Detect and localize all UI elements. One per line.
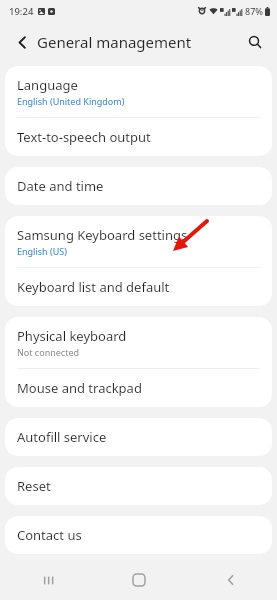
button[interactable]: Home [93, 560, 185, 600]
staticText: Autofill service [17, 428, 107, 446]
button[interactable]: Language [5, 66, 272, 117]
staticText: English (US) [17, 245, 67, 257]
staticText: English (United Kingdom) [17, 95, 125, 107]
staticText: Keyboard list and default [17, 278, 170, 296]
staticText: Text-to-speech output [17, 128, 151, 146]
button[interactable]: Mouse and trackpad [5, 369, 272, 407]
staticText: Samsung Keyboard settings [17, 226, 188, 244]
button[interactable]: Contact us [5, 516, 272, 554]
button[interactable]: Date and time [5, 167, 272, 205]
button[interactable]: Navigate up [8, 28, 36, 56]
staticText: 19:24 [9, 5, 34, 18]
button[interactable]: Keyboard list and default [5, 268, 272, 306]
button[interactable]: Physical keyboard [5, 317, 272, 368]
staticText: 87% [245, 5, 263, 17]
button[interactable]: Recent apps [0, 560, 93, 600]
staticText: Date and time [17, 177, 104, 195]
button[interactable]: Autofill service [5, 418, 272, 456]
button[interactable]: Back [185, 560, 277, 600]
button[interactable]: Text-to-speech output [5, 118, 272, 156]
staticText: Reset [17, 477, 51, 495]
button[interactable]: Search [241, 28, 269, 56]
staticText: Mouse and trackpad [17, 379, 142, 397]
button[interactable]: Samsung Keyboard settings [5, 216, 272, 267]
staticText: Physical keyboard [17, 327, 127, 345]
button[interactable]: Reset [5, 467, 272, 505]
staticText: Contact us [17, 526, 82, 544]
staticText: Not connected [17, 346, 80, 358]
staticText: General management [37, 32, 192, 52]
staticText: Language [17, 76, 78, 94]
